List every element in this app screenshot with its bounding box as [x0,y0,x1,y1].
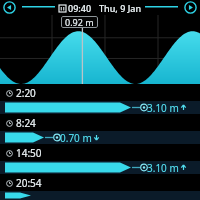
staticText: 3.10 m [147,161,179,174]
button[interactable]: 14:50 [0,144,200,174]
button[interactable]: Previous day [2,0,17,15]
button[interactable]: 2:20 [0,84,200,114]
staticText: 20:54 [16,176,42,190]
staticText: 2:20 [16,86,36,100]
staticText: 0.70 m [60,131,92,144]
staticText: 09:40 [68,2,92,14]
staticText: 3.10 m [147,101,179,114]
button[interactable]: 8:24 [0,114,200,144]
staticText: 8:24 [16,116,36,130]
staticText: 14:50 [16,146,42,160]
staticText: 0.92 m [65,16,94,28]
staticText: Thu, 9 Jan [99,2,142,14]
button[interactable]: Next day [183,0,198,15]
button[interactable]: 20:54 [0,174,200,200]
